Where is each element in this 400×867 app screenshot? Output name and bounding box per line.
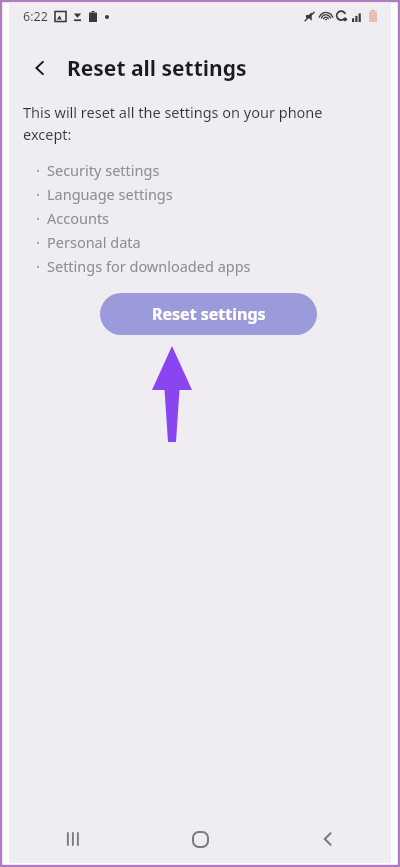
staticText: Accounts [47,208,110,228]
staticText: · [36,256,41,276]
staticText: · [36,232,41,252]
staticText: Settings for downloaded apps [47,256,251,276]
staticText: · [36,208,41,228]
staticText: Language settings [47,184,173,204]
button[interactable]: Home [137,815,264,863]
staticText: This will reset all the settings on your… [23,102,361,144]
button[interactable]: Recent apps [9,815,137,863]
staticText: Reset all settings [67,54,247,83]
staticText: Security settings [47,160,160,180]
staticText: Reset settings [152,303,266,325]
staticText: Personal data [47,232,141,252]
button[interactable]: Back [23,51,57,85]
button[interactable]: Reset settings [100,293,317,335]
staticText: 6:22 [23,8,48,25]
button[interactable]: Back [264,815,391,863]
staticText: · [36,160,41,180]
staticText: · [36,184,41,204]
